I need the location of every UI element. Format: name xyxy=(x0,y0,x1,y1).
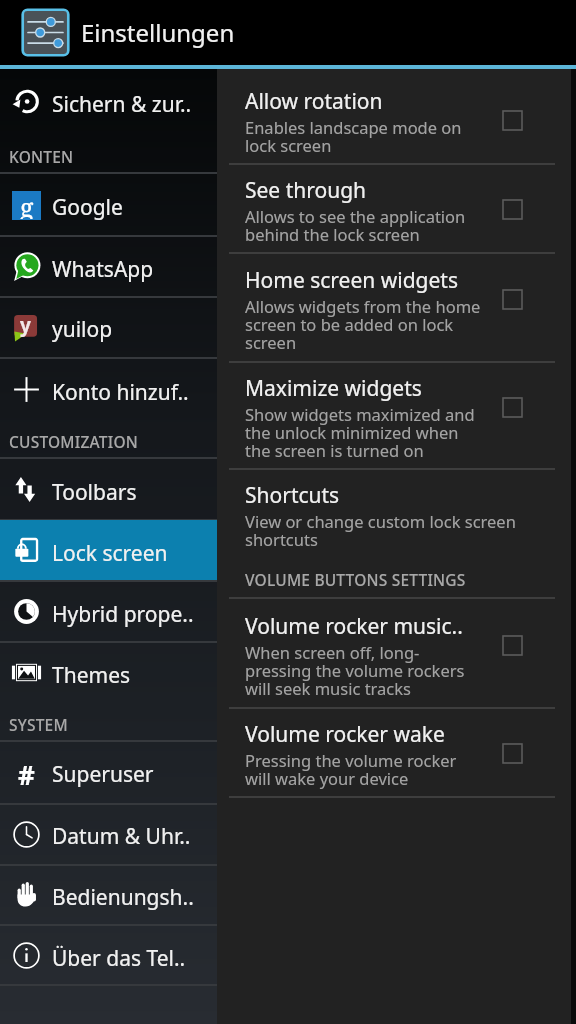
button[interactable]: Konto hinzuf.. xyxy=(0,359,217,419)
staticText: Einstellungen xyxy=(81,16,235,49)
button[interactable]: Sichern & zur.. xyxy=(0,71,217,131)
staticText: Superuser xyxy=(52,760,154,789)
button[interactable]: Themes xyxy=(0,642,217,702)
button[interactable]: Home screen widgets xyxy=(217,254,571,363)
button[interactable]: Über das Tel.. xyxy=(0,926,217,984)
staticText: Google xyxy=(52,193,123,222)
staticText: Themes xyxy=(52,661,131,690)
staticText: Bedienungsh.. xyxy=(52,883,194,912)
button[interactable]: Allow rotation xyxy=(484,101,540,139)
button[interactable]: WhatsApp xyxy=(0,237,217,296)
button[interactable]: See through xyxy=(484,190,540,228)
button[interactable]: g xyxy=(0,174,217,236)
button[interactable]: Lock screen xyxy=(0,520,217,580)
button[interactable]: Bedienungsh.. xyxy=(0,865,217,924)
staticText: Pressing the volume rocker will wake you… xyxy=(245,749,457,790)
button[interactable]: # xyxy=(0,741,217,803)
button[interactable]: y xyxy=(0,297,217,357)
button[interactable]: Volume rocker wake xyxy=(217,709,571,798)
staticText: # xyxy=(18,757,35,788)
button[interactable]: See through xyxy=(217,165,571,254)
staticText: WhatsApp xyxy=(52,255,154,284)
staticText: When screen off, long- pressing the volu… xyxy=(245,641,465,700)
button[interactable]: Volume rocker music.. xyxy=(217,599,571,709)
staticText: y xyxy=(20,312,31,338)
staticText: Home screen widgets xyxy=(245,266,458,295)
staticText: KONTEN xyxy=(9,146,74,167)
staticText: Hybrid prope.. xyxy=(52,600,194,629)
staticText: VOLUME BUTTONS SETTINGS xyxy=(245,569,466,590)
button[interactable]: Toolbars xyxy=(0,459,217,520)
staticText: Toolbars xyxy=(52,478,137,507)
button[interactable]: Allow rotation xyxy=(217,69,571,165)
button[interactable]: Volume rocker wake xyxy=(484,734,540,772)
staticText: Volume rocker wake xyxy=(245,720,445,749)
staticText: Allows widgets from the home screen to b… xyxy=(245,295,481,354)
staticText: Enables landscape mode on lock screen xyxy=(245,116,462,157)
staticText: g xyxy=(20,190,34,219)
staticText: Volume rocker music.. xyxy=(245,612,463,641)
staticText: SYSTEM xyxy=(9,714,68,735)
staticText: yuilop xyxy=(52,315,113,344)
staticText: Show widgets maximized and the unlock mi… xyxy=(245,403,475,462)
staticText: Shortcuts xyxy=(245,481,340,510)
staticText: Datum & Uhr.. xyxy=(52,822,191,851)
button[interactable]: Hybrid prope.. xyxy=(0,582,217,641)
button[interactable]: Maximize widgets xyxy=(217,363,571,470)
staticText: Sichern & zur.. xyxy=(52,90,192,119)
staticText: Maximize widgets xyxy=(245,374,422,403)
staticText: Über das Tel.. xyxy=(52,944,186,973)
button[interactable]: Home screen widgets xyxy=(484,280,540,318)
staticText: View or change custom lock screen shortc… xyxy=(245,510,516,551)
button[interactable]: Maximize widgets xyxy=(484,388,540,426)
staticText: See through xyxy=(245,176,367,205)
staticText: Konto hinzuf.. xyxy=(52,378,189,407)
button[interactable]: Volume rocker music.. xyxy=(484,626,540,664)
button[interactable]: Shortcuts xyxy=(217,470,571,558)
staticText: Allows to see the application behind the… xyxy=(245,205,466,246)
staticText: Lock screen xyxy=(52,539,168,568)
staticText: Allow rotation xyxy=(245,87,383,116)
staticText: CUSTOMIZATION xyxy=(9,431,139,452)
button[interactable]: Datum & Uhr.. xyxy=(0,804,217,864)
